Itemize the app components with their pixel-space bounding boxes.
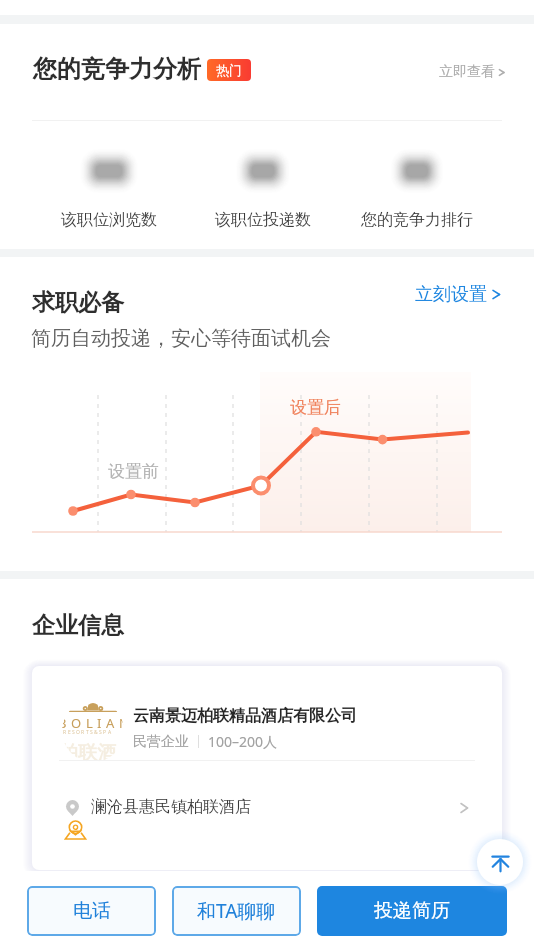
staticText: 您的竞争力排行 [361,210,473,230]
staticText: S [90,729,93,736]
staticText: E [68,729,71,736]
staticText: 投递简历 [374,899,450,923]
staticText: 澜沧县惠民镇柏联酒店 [91,797,251,817]
staticText: R [63,729,67,736]
staticText: S [99,729,102,736]
staticText: 立即查看 [439,63,495,81]
staticText: P [103,729,107,736]
button[interactable]: 澜沧县惠民镇柏联酒店 [32,761,502,870]
staticText: B [62,714,67,732]
staticText: T [86,729,89,736]
staticText: 简历自动投递，安心等待面试机会 [31,326,331,351]
staticText: L [86,714,93,732]
staticText: R [81,729,85,736]
button[interactable]: 立即查看 [439,63,505,81]
staticText: 设置前 [108,461,159,482]
staticText: 求职必备 [32,288,124,317]
staticText: S [72,729,75,736]
staticText: A [106,714,115,732]
staticText: I [97,714,102,732]
staticText: 热门 [216,62,242,78]
button[interactable]: B [32,666,502,870]
staticText: O [76,729,80,736]
button[interactable]: 立刻设置 [415,283,501,306]
staticText: 企业信息 [32,611,124,640]
staticText: 立刻设置 [415,283,487,306]
staticText: 柏联酒店 [62,741,121,762]
staticText: O [71,714,82,732]
staticText: 和TA聊聊 [197,898,276,924]
button[interactable]: 投递简历 [317,886,507,936]
staticText: A [108,729,111,736]
staticText: 设置后 [290,397,341,418]
button[interactable]: 电话 [27,886,156,936]
staticText: 民营企业 [133,733,189,751]
staticText: & [94,729,98,736]
staticText: 云南景迈柏联精品酒店有限公司 [133,706,357,726]
button[interactable]: Back to top [468,830,532,894]
staticText: 电话 [73,899,111,923]
staticText: 您的竞争力分析 [33,54,201,84]
staticText: 100–200人 [208,732,278,751]
staticText: 该职位浏览数 [61,210,157,230]
button[interactable]: 您的竞争力分析 [33,54,251,84]
button[interactable]: 和TA聊聊 [172,886,301,936]
staticText: 该职位投递数 [215,210,311,230]
